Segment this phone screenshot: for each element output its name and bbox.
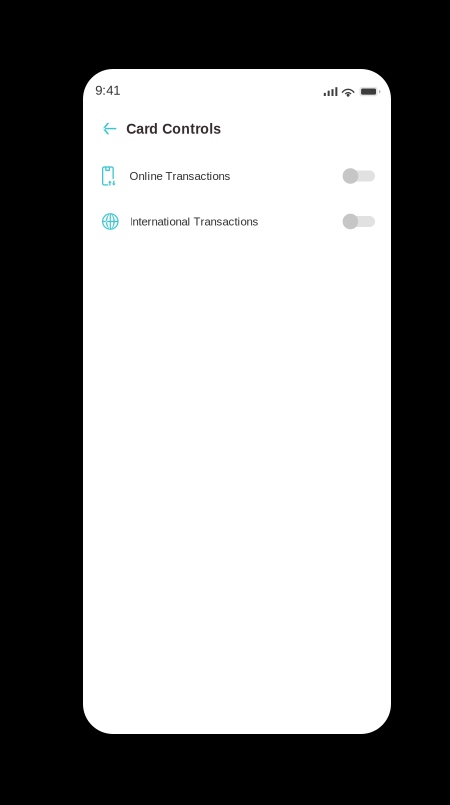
- button[interactable]: Online Transactions, off: [343, 165, 375, 187]
- staticText: Card Controls: [126, 121, 221, 137]
- staticText: International Transactions: [129, 215, 258, 228]
- button[interactable]: International Transactions, off: [343, 210, 375, 232]
- button[interactable]: International Transactions: [102, 208, 375, 234]
- button[interactable]: Online Transactions: [102, 163, 375, 189]
- staticText: 9:41: [95, 83, 120, 98]
- staticText: Online Transactions: [129, 170, 230, 182]
- button[interactable]: Back: [103, 120, 116, 138]
